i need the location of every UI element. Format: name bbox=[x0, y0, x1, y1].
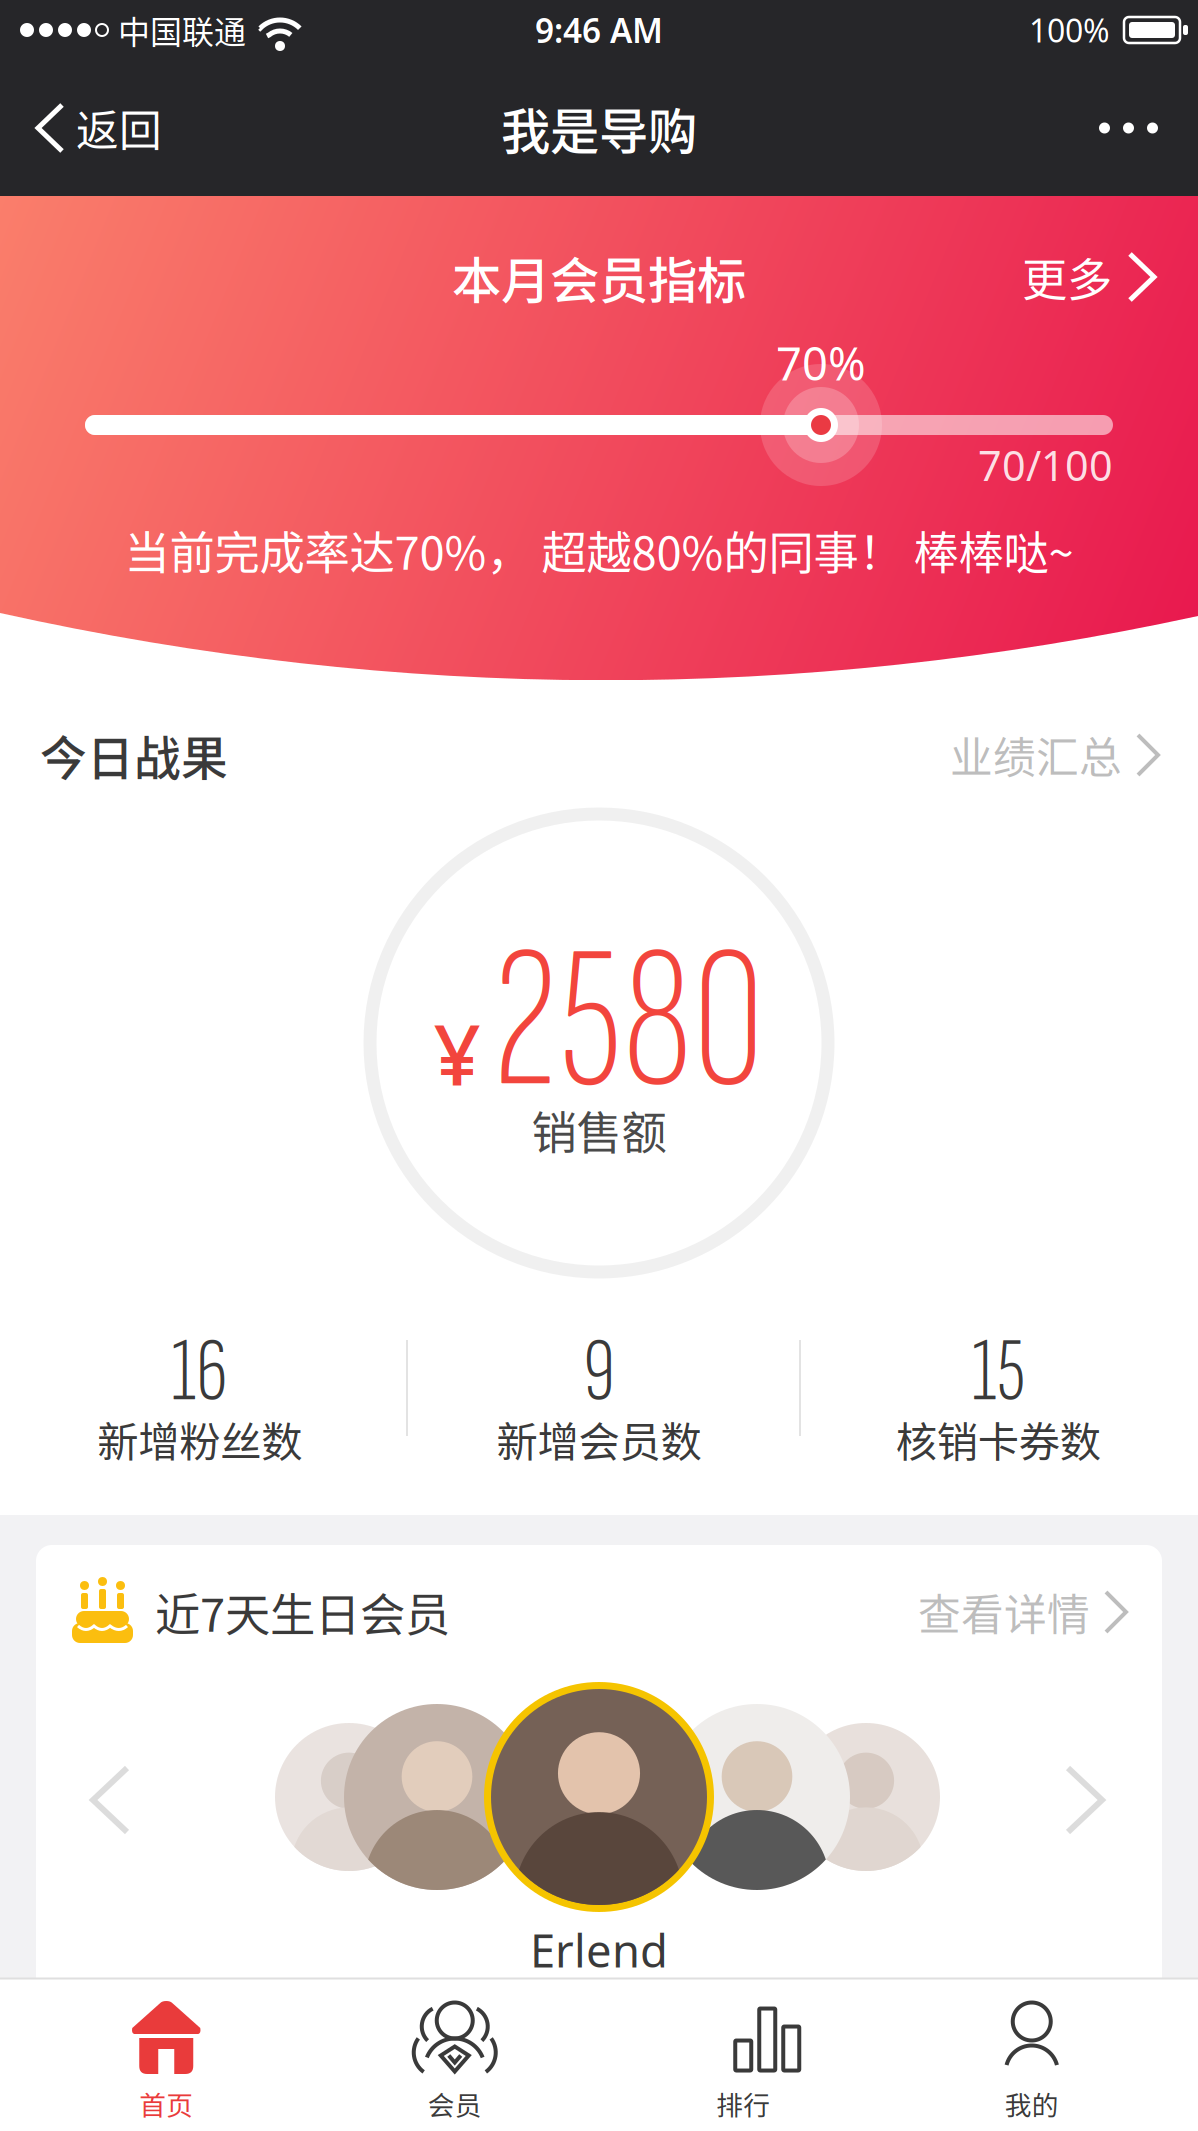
staticText: 新增粉丝数 bbox=[97, 1409, 302, 1469]
staticText: 我的 bbox=[1005, 2084, 1059, 2123]
staticText: 排行 bbox=[716, 2084, 770, 2123]
staticText: Erlend bbox=[530, 1920, 668, 1980]
button[interactable]: 查看详情 bbox=[918, 1581, 1126, 1643]
staticText: ¥ bbox=[433, 998, 480, 1108]
staticText: 2580 bbox=[492, 901, 764, 1145]
staticText: 70/100 bbox=[978, 438, 1113, 492]
staticText: 会员 bbox=[428, 2084, 482, 2123]
button[interactable]: Previous bbox=[93, 1768, 127, 1832]
button[interactable]: 我的 bbox=[887, 2000, 1176, 2123]
staticText: 业绩汇总 bbox=[950, 724, 1122, 786]
button[interactable]: Back bbox=[0, 97, 162, 159]
staticText: 核销卡券数 bbox=[896, 1409, 1101, 1469]
staticText: 首页 bbox=[139, 2084, 193, 2123]
staticText: 我是导购 bbox=[501, 92, 697, 164]
button[interactable]: 业绩汇总 bbox=[950, 724, 1158, 786]
button[interactable]: Erlend bbox=[484, 1682, 714, 1912]
button[interactable]: 会员 bbox=[310, 2000, 599, 2123]
staticText: 更多 bbox=[1022, 244, 1112, 310]
staticText: 本月会员指标 bbox=[452, 241, 746, 313]
staticText: 15 bbox=[972, 1318, 1025, 1426]
button[interactable]: 首页 bbox=[22, 2000, 310, 2123]
staticText: 近7天生日会员 bbox=[155, 1579, 450, 1645]
staticText: 16 bbox=[171, 1318, 228, 1426]
staticText: 9 bbox=[583, 1318, 615, 1426]
staticText: 9:46 AM bbox=[535, 8, 663, 52]
button[interactable]: Next bbox=[1068, 1768, 1102, 1832]
staticText: 查看详情 bbox=[918, 1581, 1090, 1643]
staticText: 返回 bbox=[76, 97, 162, 159]
button[interactable]: More bbox=[1099, 122, 1198, 133]
staticText: 100% bbox=[1029, 9, 1110, 51]
staticText: 今日战果 bbox=[40, 721, 228, 789]
staticText: 当前完成率达70%， 超越80%的同事！ 棒棒哒~ bbox=[124, 517, 1073, 583]
button[interactable]: 更多 bbox=[1022, 237, 1154, 317]
staticText: 销售额 bbox=[531, 1097, 666, 1163]
staticText: 新增会员数 bbox=[496, 1409, 701, 1469]
staticText: 70% bbox=[776, 333, 866, 393]
button[interactable]: 排行 bbox=[599, 2000, 887, 2123]
staticText: 中国联通 bbox=[118, 7, 246, 53]
